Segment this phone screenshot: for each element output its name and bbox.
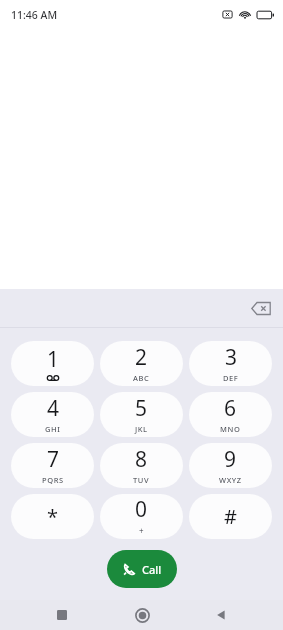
button[interactable]: Backspace bbox=[245, 292, 277, 324]
button[interactable]: 2 bbox=[100, 341, 183, 386]
button[interactable]: 3 bbox=[189, 341, 272, 386]
staticText: 0 bbox=[135, 495, 148, 524]
staticText: 9 bbox=[224, 445, 237, 474]
button[interactable]: 6 bbox=[189, 392, 272, 437]
staticText: PQRS bbox=[42, 475, 64, 485]
staticText: WXYZ bbox=[219, 475, 242, 485]
button[interactable]: * bbox=[11, 494, 94, 539]
button[interactable]: Recent apps bbox=[45, 600, 79, 630]
staticText: * bbox=[47, 503, 59, 530]
button[interactable]: Back bbox=[204, 600, 238, 630]
staticText: 2 bbox=[135, 343, 148, 372]
staticText: 5 bbox=[135, 394, 148, 423]
button[interactable]: Call bbox=[107, 550, 177, 588]
staticText: MNO bbox=[220, 424, 241, 434]
button[interactable]: 0 bbox=[100, 494, 183, 539]
staticText: ABC bbox=[133, 373, 150, 383]
staticText: # bbox=[224, 503, 237, 530]
staticText: 4 bbox=[47, 394, 60, 423]
staticText: DEF bbox=[223, 373, 239, 383]
staticText: 3 bbox=[225, 343, 238, 372]
staticText: 8 bbox=[135, 445, 148, 474]
staticText: 7 bbox=[47, 445, 60, 474]
staticText: JKL bbox=[135, 424, 148, 434]
button[interactable]: 1 bbox=[11, 341, 94, 386]
staticText: 6 bbox=[224, 394, 237, 423]
staticText: 1 bbox=[47, 345, 60, 374]
staticText: GHI bbox=[45, 424, 61, 434]
button[interactable]: 7 bbox=[11, 443, 94, 488]
staticText: + bbox=[139, 525, 144, 536]
staticText: 11:46 AM bbox=[11, 8, 58, 22]
button[interactable]: Home bbox=[125, 600, 159, 630]
button[interactable]: 5 bbox=[100, 392, 183, 437]
staticText: TUV bbox=[133, 475, 150, 485]
button[interactable]: 9 bbox=[189, 443, 272, 488]
button[interactable]: 8 bbox=[100, 443, 183, 488]
staticText: Call bbox=[142, 562, 162, 577]
button[interactable]: 4 bbox=[11, 392, 94, 437]
button[interactable]: # bbox=[189, 494, 272, 539]
